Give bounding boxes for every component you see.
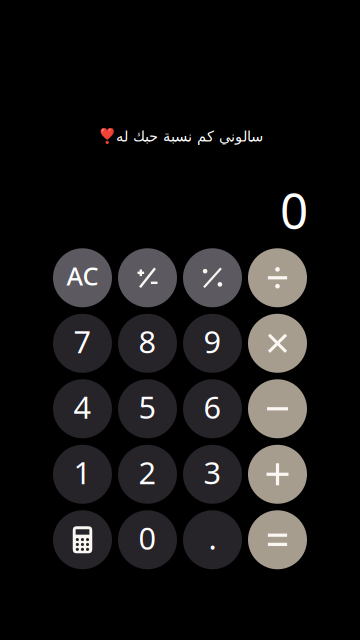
button[interactable]: 4 (53, 379, 112, 438)
staticText: 0 (280, 177, 308, 242)
button[interactable]: 7 (53, 314, 112, 373)
button[interactable]: 5 (118, 379, 177, 438)
button[interactable]: Plus (248, 445, 307, 504)
button[interactable]: Divide (248, 248, 307, 307)
staticText: 4 (73, 386, 91, 427)
staticText: 1 (73, 452, 91, 493)
button[interactable]: Plus minus (118, 248, 177, 307)
button[interactable]: Multiply (248, 314, 307, 373)
button[interactable]: 2 (118, 445, 177, 504)
button[interactable]: Calculator (53, 510, 112, 569)
button[interactable]: 3 (183, 445, 242, 504)
staticText: 8 (138, 321, 156, 362)
staticText: سالوني كم نسبة حبك له❣️ (97, 128, 262, 145)
staticText: 2 (138, 452, 156, 493)
button[interactable]: Equals (248, 510, 307, 569)
button[interactable]: 6 (183, 379, 242, 438)
staticText: 5 (138, 386, 156, 427)
staticText: 0 (138, 517, 156, 558)
button[interactable]: 9 (183, 314, 242, 373)
button[interactable]: Percent (183, 248, 242, 307)
staticText: 6 (203, 386, 221, 427)
staticText: 7 (73, 321, 91, 362)
button[interactable]: . (183, 510, 242, 569)
button[interactable]: Minus (248, 379, 307, 438)
staticText: 9 (203, 321, 221, 362)
button[interactable]: 8 (118, 314, 177, 373)
staticText: 3 (203, 452, 221, 493)
button[interactable]: AC (53, 248, 112, 307)
button[interactable]: 0 (118, 510, 177, 569)
staticText: . (208, 517, 216, 558)
staticText: AC (66, 259, 98, 293)
button[interactable]: 1 (53, 445, 112, 504)
